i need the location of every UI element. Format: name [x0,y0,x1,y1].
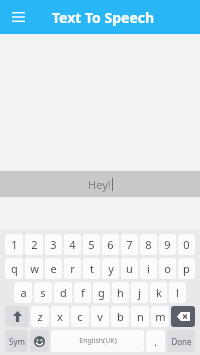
button[interactable]: English(UK) [51,330,144,352]
button[interactable]: 5 [83,234,100,255]
staticText: w [30,261,39,276]
button[interactable]: s [34,282,52,303]
staticText: 1 [11,237,18,252]
button[interactable]: y [102,258,119,279]
button[interactable]: j [131,282,148,303]
staticText: d [60,285,67,300]
button[interactable]: 4 [64,234,81,255]
staticText: k [156,285,162,300]
staticText: 7 [126,237,133,252]
button[interactable]: Sym [5,330,28,352]
button[interactable]: x [51,306,69,327]
staticText: English(UK) [79,336,117,346]
button[interactable]: Hey! [0,171,200,197]
button[interactable]: 1 [5,234,23,255]
button[interactable]: 0 [178,234,195,255]
staticText: 6 [107,237,114,252]
staticText: b [117,309,124,324]
button[interactable]: 3 [45,234,62,255]
button[interactable]: i [140,258,157,279]
button[interactable]: c [71,306,89,327]
staticText: 5 [88,237,95,252]
staticText: e [50,261,57,276]
staticText: a [20,285,27,300]
staticText: i [147,261,150,276]
button[interactable]: a [14,282,32,303]
staticText: u [126,261,133,276]
button[interactable]: k [150,282,167,303]
button[interactable]: n [131,306,149,327]
staticText: 4 [69,237,76,252]
button[interactable]: l [169,282,186,303]
button[interactable]: d [54,282,72,303]
button[interactable]: w [25,258,43,279]
button[interactable]: r [64,258,81,279]
button[interactable]: b [111,306,129,327]
button[interactable]: o [159,258,176,279]
staticText: 0 [183,237,190,252]
button[interactable]: Backspace [171,306,195,327]
staticText: r [70,261,75,276]
button[interactable]: v [91,306,109,327]
staticText: 9 [164,237,171,252]
staticText: j [138,285,141,300]
staticText: l [176,285,179,300]
staticText: Hey! [88,177,111,192]
button[interactable]: h [112,282,129,303]
button[interactable]: u [121,258,138,279]
button[interactable]: 9 [159,234,176,255]
staticText: 2 [31,237,38,252]
button[interactable]: t [83,258,100,279]
staticText: y [108,261,114,276]
staticText: m [155,309,166,324]
button[interactable]: 8 [140,234,157,255]
button[interactable]: . [146,330,165,352]
button[interactable]: p [178,258,195,279]
button[interactable]: Done [167,330,195,352]
button[interactable]: m [151,306,169,327]
staticText: 8 [145,237,152,252]
staticText: 3 [50,237,57,252]
button[interactable]: q [5,258,23,279]
button[interactable]: 6 [102,234,119,255]
staticText: o [164,261,171,276]
button[interactable]: g [93,282,110,303]
button[interactable]: f [74,282,91,303]
button[interactable]: 2 [25,234,43,255]
staticText: n [137,309,144,324]
staticText: q [11,261,18,276]
staticText: c [77,309,83,324]
button[interactable]: z [31,306,49,327]
button[interactable]: Open navigation menu [8,7,28,27]
staticText: g [98,285,105,300]
button[interactable]: e [45,258,62,279]
staticText: x [57,309,63,324]
button[interactable]: 7 [121,234,138,255]
staticText: p [183,261,190,276]
staticText: h [117,285,124,300]
button[interactable]: Shift [5,306,29,327]
staticText: . [154,334,157,349]
staticText: t [90,261,94,276]
button[interactable]: Emoji [30,330,49,352]
staticText: s [40,285,46,300]
staticText: Text To Speech [52,8,155,27]
staticText: f [81,285,85,300]
staticText: z [37,309,43,324]
staticText: Sym [9,336,25,347]
staticText: v [97,309,103,324]
staticText: Done [171,336,192,347]
